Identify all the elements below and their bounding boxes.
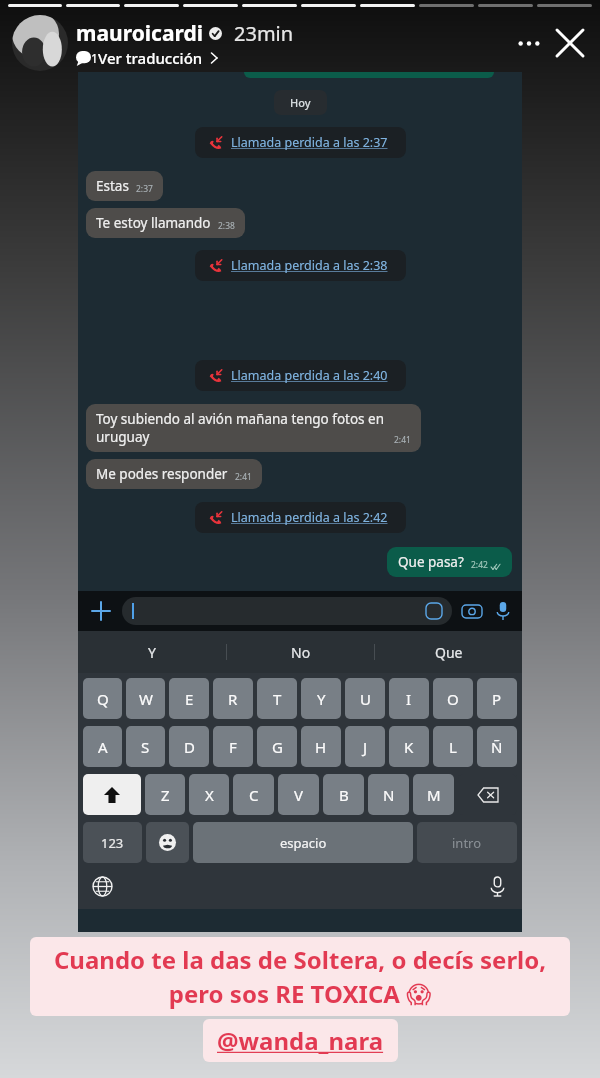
staticText: I <box>406 689 412 709</box>
staticText: Z <box>161 785 170 805</box>
staticText: Y <box>317 689 326 709</box>
button[interactable]: Toy subiendo al avión mañana tengo fotos… <box>86 404 421 452</box>
button[interactable]: Y <box>301 678 341 719</box>
button[interactable]: Idioma <box>93 877 112 896</box>
button[interactable]: B <box>323 774 364 815</box>
staticText: Te estoy llamando <box>96 214 211 232</box>
button[interactable]: espacio <box>193 822 413 863</box>
staticText: Me podes responder <box>96 465 228 483</box>
staticText: Estas <box>96 177 129 195</box>
button[interactable]: E <box>169 678 209 719</box>
button[interactable]: U <box>345 678 385 719</box>
button[interactable]: 123 <box>83 822 142 863</box>
button[interactable]: R <box>213 678 253 719</box>
button[interactable]: K <box>389 726 429 767</box>
staticText: 123 <box>101 834 124 852</box>
staticText: R <box>228 689 238 709</box>
button[interactable]: X <box>189 774 229 815</box>
staticText: intro <box>452 834 482 852</box>
staticText: Toy subiendo al avión mañana tengo fotos… <box>96 410 387 446</box>
button[interactable]: V <box>278 774 319 815</box>
staticText: 1 <box>91 50 98 66</box>
staticText: 23min <box>234 20 294 47</box>
button[interactable]: Te estoy llamando <box>86 208 245 238</box>
staticText: Q <box>97 689 109 709</box>
staticText: 2:41 <box>394 434 411 446</box>
button[interactable]: I <box>389 678 429 719</box>
button[interactable]: O <box>433 678 473 719</box>
button[interactable]: Dictar <box>488 877 507 896</box>
button[interactable]: Mayúsculas <box>83 774 141 815</box>
button[interactable]: Que <box>375 631 522 673</box>
staticText: X <box>205 785 214 805</box>
button[interactable]: C <box>233 774 274 815</box>
button[interactable]: Z <box>145 774 185 815</box>
staticText: O <box>447 689 459 709</box>
button[interactable]: Llamada perdida <box>195 360 406 391</box>
staticText: P <box>492 689 502 709</box>
button[interactable]: Audio <box>494 602 512 620</box>
staticText: F <box>229 737 237 757</box>
staticText: Llamada perdida a las 2:42 <box>231 509 388 526</box>
button[interactable]: @wanda_nara <box>203 1019 398 1062</box>
button[interactable]: Llamada perdida <box>195 502 406 533</box>
button[interactable]: N <box>368 774 409 815</box>
staticText: K <box>404 737 414 757</box>
button[interactable]: intro <box>417 822 517 863</box>
other: Stickers <box>426 603 442 619</box>
button[interactable]: No <box>227 631 374 673</box>
staticText: Llamada perdida a las 2:40 <box>231 367 388 384</box>
button[interactable]: A <box>83 726 122 767</box>
staticText: H <box>315 737 327 757</box>
button[interactable] <box>12 15 68 71</box>
button[interactable]: Cuando te la das de Soltera, o decís ser… <box>30 937 570 1016</box>
button[interactable]: Hoy <box>274 90 327 115</box>
other: Llamada perdida <box>209 511 222 524</box>
staticText: Que <box>435 643 463 662</box>
button[interactable]: Que pasa? <box>387 547 512 577</box>
button[interactable]: Borrar <box>458 774 517 815</box>
other: Llamada perdida <box>209 136 222 149</box>
button[interactable]: H <box>301 726 341 767</box>
staticText: C <box>249 785 259 805</box>
button[interactable]: P <box>477 678 517 719</box>
button[interactable]: Adjuntar <box>88 598 114 624</box>
staticText: D <box>184 737 195 757</box>
staticText: Hoy <box>290 95 311 110</box>
staticText: 2:37 <box>136 183 153 195</box>
button[interactable]: Cerrar <box>550 23 590 63</box>
staticText: E <box>185 689 194 709</box>
button[interactable]: L <box>433 726 473 767</box>
staticText: M <box>427 785 441 805</box>
button[interactable]: W <box>126 678 165 719</box>
other: Verificado <box>209 27 222 40</box>
button[interactable]: Ñ <box>477 726 517 767</box>
button[interactable]: M <box>413 774 454 815</box>
button[interactable]: G <box>257 726 297 767</box>
button[interactable]: Emoji <box>146 822 189 863</box>
button[interactable]: Q <box>83 678 122 719</box>
staticText: Llamada perdida a las 2:38 <box>231 257 388 274</box>
button[interactable]: F <box>213 726 253 767</box>
staticText: B <box>339 785 349 805</box>
button[interactable]: S <box>126 726 165 767</box>
staticText: 2:41 <box>235 471 252 483</box>
staticText: No <box>291 643 311 662</box>
button[interactable]: Me podes responder <box>86 459 262 489</box>
button[interactable]: Estas <box>86 171 163 201</box>
button[interactable]: 1 <box>76 48 219 68</box>
button[interactable]: Más opciones <box>512 26 546 60</box>
staticText: Ñ <box>491 737 503 757</box>
button[interactable]: Stickers <box>122 597 452 625</box>
button[interactable]: Y <box>78 631 226 673</box>
button[interactable]: J <box>345 726 385 767</box>
button[interactable]: T <box>257 678 297 719</box>
button[interactable]: Llamada perdida <box>195 127 406 158</box>
button[interactable]: D <box>169 726 209 767</box>
button[interactable]: Cámara <box>462 601 482 621</box>
staticText: S <box>141 737 150 757</box>
staticText: Cuando te la das de Soltera, o decís ser… <box>42 943 558 1010</box>
button[interactable]: Llamada perdida <box>195 250 406 281</box>
other: Llamada perdida <box>209 369 222 382</box>
staticText: 2:42 <box>471 559 488 571</box>
